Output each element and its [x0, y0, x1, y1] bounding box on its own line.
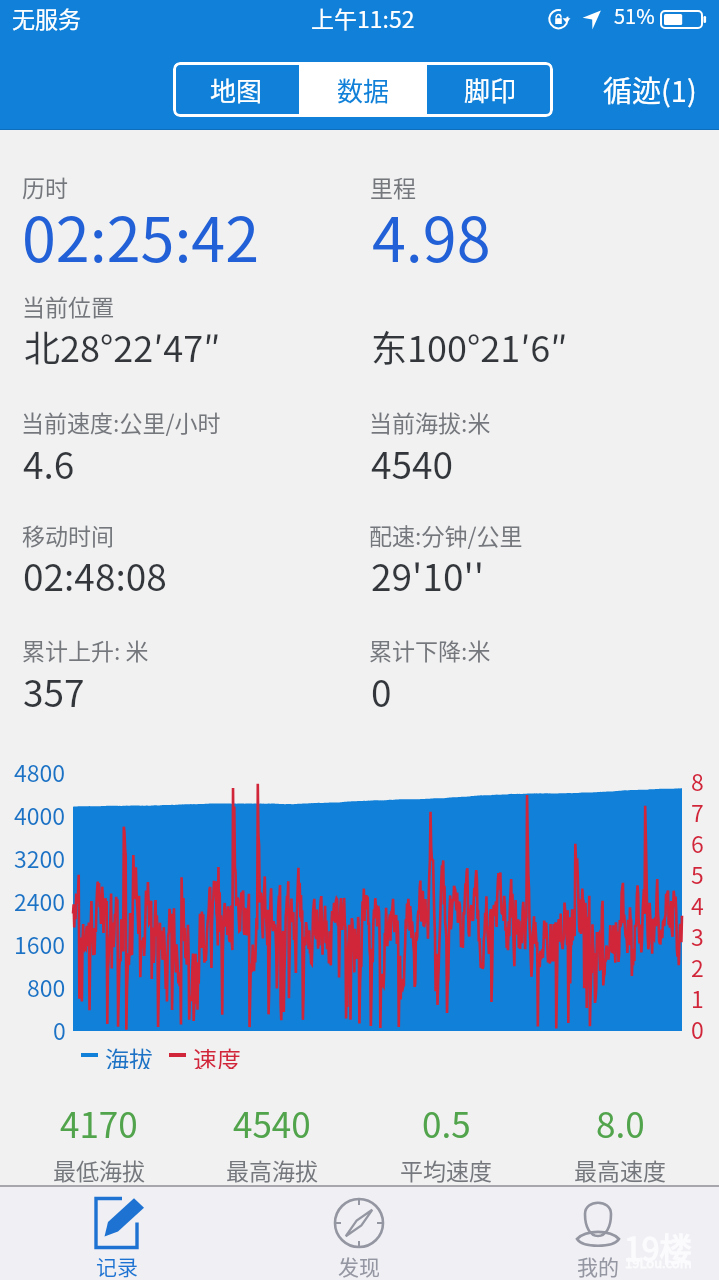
staticText: 历时 [22, 170, 68, 203]
staticText: 地图 [210, 71, 263, 109]
staticText: 东100°21′6″ [371, 320, 568, 372]
staticText: 4800 [14, 755, 66, 785]
staticText: 记录 [96, 1251, 138, 1280]
button[interactable]: 地图 [173, 62, 299, 117]
button[interactable]: 数据 [302, 62, 424, 117]
staticText: 7 [691, 795, 704, 825]
staticText: 29'10'' [371, 548, 484, 602]
staticText: 800 [27, 970, 66, 1000]
staticText: 4170 [60, 1097, 138, 1148]
staticText: 北28°22′47″ [24, 320, 221, 372]
staticText: 2400 [14, 884, 66, 914]
staticText: 0 [53, 1013, 66, 1043]
staticText: 海拔 [105, 1041, 153, 1069]
staticText: 0 [691, 1012, 704, 1042]
staticText: 配速:分钟/公里 [369, 518, 523, 551]
staticText: 累计上升: 米 [22, 633, 149, 666]
staticText: 4.98 [372, 191, 491, 279]
staticText: 8 [691, 764, 704, 794]
staticText: 8.0 [596, 1097, 645, 1148]
staticText: 当前位置 [22, 289, 114, 322]
staticText: 脚印 [464, 71, 517, 109]
button[interactable]: 发现 [279, 1185, 439, 1280]
staticText: 无服务 [12, 1, 81, 34]
staticText: 最低海拔 [53, 1153, 145, 1186]
staticText: 4540 [233, 1097, 311, 1148]
staticText: 发现 [338, 1251, 380, 1280]
button[interactable]: 记录 [37, 1185, 197, 1280]
staticText: 4 [691, 888, 704, 918]
button[interactable]: 脚印 [427, 62, 553, 117]
staticText: 平均速度 [400, 1153, 492, 1186]
staticText: 02:48:08 [23, 548, 167, 602]
staticText: 4540 [371, 436, 454, 490]
staticText: 移动时间 [22, 518, 114, 551]
button[interactable]: 4170 [29, 1097, 169, 1187]
staticText: 当前海拔:米 [369, 405, 491, 438]
staticText: 数据 [337, 71, 390, 109]
button[interactable]: 我的 [518, 1185, 678, 1280]
staticText: 最高速度 [574, 1153, 666, 1186]
staticText: 2 [691, 950, 704, 980]
staticText: 1600 [14, 927, 66, 957]
staticText: 最高海拔 [226, 1153, 318, 1186]
staticText: 4.6 [23, 436, 75, 490]
staticText: 0.5 [422, 1097, 471, 1148]
button[interactable]: 0.5 [376, 1097, 516, 1187]
staticText: 当前速度:公里/小时 [21, 405, 221, 438]
button[interactable]: 4540 [202, 1097, 342, 1187]
staticText: 上午11:52 [311, 1, 415, 34]
staticText: 里程 [370, 170, 416, 203]
button[interactable]: 8.0 [550, 1097, 690, 1187]
staticText: 02:25:42 [22, 191, 260, 279]
staticText: 0 [371, 664, 392, 718]
staticText: 357 [23, 664, 85, 718]
staticText: 我的 [577, 1251, 619, 1280]
staticText: 3 [691, 919, 704, 949]
staticText: 5 [691, 857, 704, 887]
staticText: 1 [691, 981, 704, 1011]
staticText: 循迹(1) [603, 68, 697, 110]
staticText: 19楼 [624, 1224, 692, 1270]
staticText: 4000 [14, 798, 66, 828]
staticText: 速度 [193, 1041, 241, 1069]
staticText: 19Lou.com [625, 1253, 692, 1272]
staticText: 51% [614, 1, 655, 30]
staticText: 累计下降:米 [369, 633, 491, 666]
staticText: 3200 [14, 841, 66, 871]
staticText: 6 [691, 826, 704, 856]
button[interactable]: 循迹(1) [592, 60, 708, 118]
